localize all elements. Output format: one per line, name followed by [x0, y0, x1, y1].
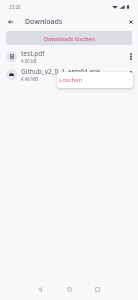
button[interactable]: Home	[62, 282, 76, 296]
staticText: Downloads	[25, 17, 63, 27]
staticText: 4.46 MB	[21, 76, 39, 82]
button[interactable]: Back	[2, 14, 19, 30]
button[interactable]: Close	[122, 14, 138, 30]
staticText: test.pdf	[21, 49, 45, 58]
button[interactable]: More options	[124, 47, 138, 65]
button[interactable]: test.pdf	[0, 47, 138, 65]
button[interactable]: Recents	[90, 282, 104, 296]
button[interactable]: Github_v2_0_1_arm64.apk	[0, 65, 138, 83]
staticText: Github_v2_0_1_arm64.apk	[21, 67, 101, 76]
button[interactable]: More options	[124, 65, 138, 83]
button[interactable]: Back	[33, 282, 47, 296]
staticText: Löschen	[59, 76, 83, 84]
staticText: 4.00 kB	[21, 58, 37, 64]
staticText: Downloads löschen	[44, 35, 95, 42]
button[interactable]: Löschen	[57, 72, 133, 88]
staticText: 23:20	[9, 4, 21, 10]
button[interactable]: Downloads löschen	[6, 31, 132, 45]
